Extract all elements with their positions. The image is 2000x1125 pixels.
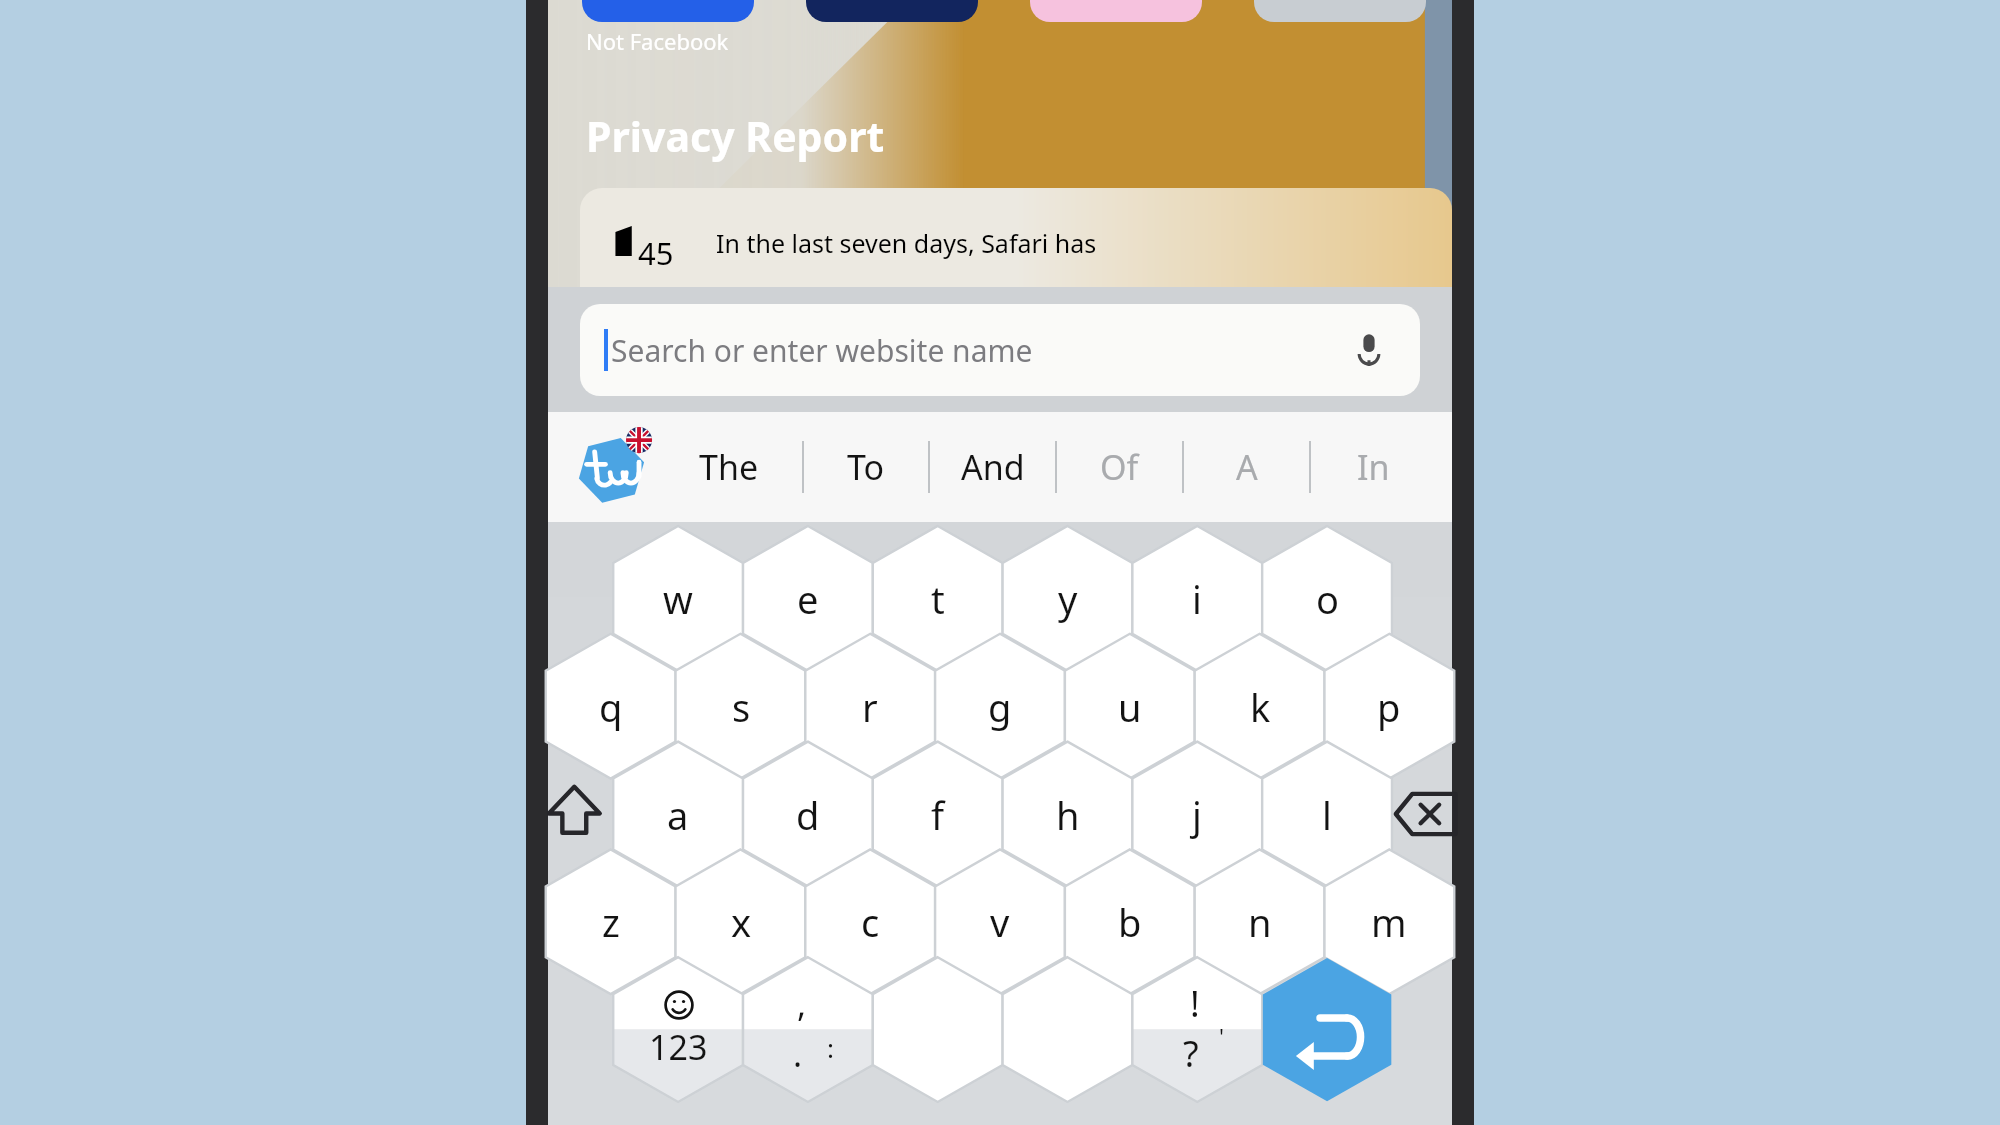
staticText: o [1316, 573, 1339, 625]
button[interactable]: v [935, 849, 1065, 994]
staticText: ? [1183, 1029, 1199, 1078]
button[interactable]: q [546, 634, 676, 779]
staticText: f [931, 789, 945, 841]
button[interactable]: b [1065, 849, 1195, 994]
staticText: q [599, 681, 623, 733]
button[interactable]: Enter [1262, 957, 1392, 1102]
button[interactable]: y [1003, 526, 1133, 671]
button[interactable]: App shortcut [806, 0, 978, 22]
staticText: In the last seven days, Safari has [716, 226, 1097, 260]
staticText: ! [1190, 979, 1200, 1028]
staticText: To [847, 444, 885, 490]
button[interactable]: Voice search [1346, 327, 1392, 373]
staticText: . [793, 1031, 803, 1077]
staticText: r [862, 681, 878, 733]
button[interactable]: Backspace [1384, 768, 1467, 864]
staticText: 45 [638, 232, 674, 274]
staticText: c [861, 896, 880, 948]
staticText: y [1058, 573, 1078, 625]
staticText: In [1357, 444, 1390, 490]
staticText: v [990, 896, 1010, 948]
button[interactable]: The [656, 412, 802, 522]
staticText: z [602, 896, 620, 948]
button[interactable]: Space [873, 957, 1133, 1102]
button[interactable]: f [873, 742, 1003, 887]
button[interactable]: i [1132, 526, 1262, 671]
staticText: t [931, 573, 945, 625]
button[interactable]: a [613, 742, 743, 887]
staticText: d [796, 789, 820, 841]
staticText: k [1250, 681, 1271, 733]
button[interactable]: k [1195, 634, 1325, 779]
staticText: Not Facebook [586, 26, 729, 56]
button[interactable]: c [805, 849, 935, 994]
button[interactable]: m [1324, 849, 1454, 994]
staticText: s [732, 681, 751, 733]
staticText: b [1118, 896, 1142, 948]
staticText: j [1192, 789, 1202, 841]
button[interactable]: And [930, 412, 1055, 522]
staticText: ' [1219, 1021, 1224, 1051]
button[interactable]: u [1065, 634, 1195, 779]
staticText: h [1056, 789, 1080, 841]
button[interactable]: l [1262, 742, 1392, 887]
staticText: g [988, 681, 1012, 733]
button[interactable]: App shortcut [582, 0, 754, 22]
button[interactable]: r [805, 634, 935, 779]
button[interactable]: x [676, 849, 806, 994]
button[interactable]: Numbers and emoji [613, 957, 743, 1102]
button[interactable]: p [1324, 634, 1454, 779]
button[interactable]: d [743, 742, 873, 887]
button[interactable]: App shortcut [1254, 0, 1426, 22]
button[interactable]: Exclamation question [1132, 957, 1262, 1102]
button[interactable]: o [1262, 526, 1392, 671]
button[interactable]: A [1184, 412, 1309, 522]
staticText: p [1377, 681, 1401, 733]
staticText: And [961, 444, 1025, 490]
button[interactable]: App shortcut [1030, 0, 1202, 22]
staticText: w [663, 573, 693, 625]
staticText: x [731, 896, 752, 948]
staticText: , [797, 981, 807, 1027]
staticText: n [1248, 896, 1272, 948]
staticText: : [827, 1030, 834, 1065]
button[interactable]: e [743, 526, 873, 671]
button[interactable]: w [613, 526, 743, 671]
staticText: a [667, 789, 689, 841]
staticText: Of [1100, 444, 1139, 490]
button[interactable]: 45 [580, 188, 1452, 298]
button[interactable]: Punctuation [743, 957, 873, 1102]
staticText: Privacy Report [586, 108, 885, 164]
staticText: u [1118, 681, 1142, 733]
button[interactable]: z [546, 849, 676, 994]
button[interactable]: j [1132, 742, 1262, 887]
staticText: l [1322, 789, 1332, 841]
button[interactable]: Typewise keyboard [572, 425, 656, 509]
button[interactable]: In [1311, 412, 1436, 522]
button[interactable]: g [935, 634, 1065, 779]
staticText: The [699, 444, 759, 490]
button[interactable]: Shift [533, 768, 616, 864]
staticText: i [1192, 573, 1202, 625]
button[interactable]: Of [1057, 412, 1182, 522]
staticText: 123 [649, 1024, 708, 1070]
button[interactable]: h [1003, 742, 1133, 887]
button[interactable]: t [873, 526, 1003, 671]
staticText: e [797, 573, 819, 625]
staticText: A [1236, 444, 1258, 490]
staticText: m [1371, 896, 1407, 948]
button[interactable]: Search or enter website name [580, 304, 1420, 396]
button[interactable]: To [804, 412, 928, 522]
button[interactable]: n [1195, 849, 1325, 994]
staticText: Search or enter website name [611, 330, 1033, 371]
button[interactable]: s [676, 634, 806, 779]
